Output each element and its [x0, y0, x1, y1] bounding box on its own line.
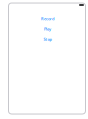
button[interactable]: Stop: [8, 37, 85, 42]
staticText: Stop: [43, 37, 51, 42]
button[interactable]: Play: [8, 26, 85, 32]
staticText: Play: [44, 26, 51, 32]
button[interactable]: Menu: [79, 4, 84, 6]
staticText: Record: [41, 16, 54, 21]
button[interactable]: Record: [8, 16, 85, 21]
